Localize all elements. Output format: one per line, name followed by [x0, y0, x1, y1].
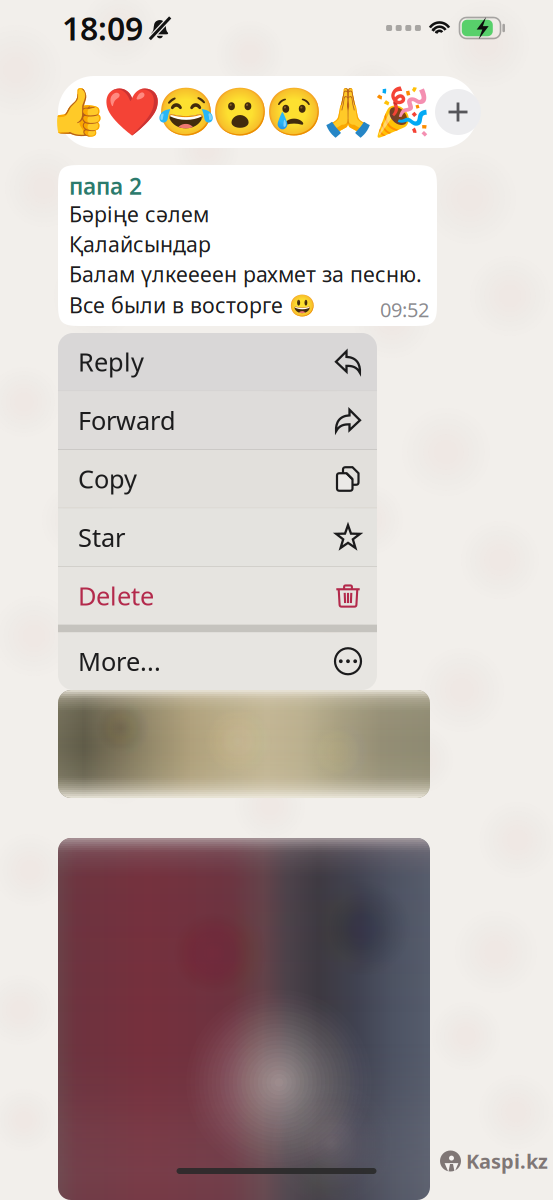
button[interactable]: More...	[58, 632, 377, 690]
button[interactable]: React ❤️	[105, 76, 159, 148]
button[interactable]: Copy	[58, 450, 377, 507]
staticText: Kaspi.kz	[466, 1148, 548, 1174]
staticText: Балам үлкеееен рахмет за песню.	[69, 260, 422, 288]
button[interactable]: More reactions	[429, 76, 487, 148]
button[interactable]: React 😮	[213, 76, 267, 148]
button[interactable]: React 🙏	[321, 76, 375, 148]
staticText: Бәріңе сәлем	[69, 200, 209, 228]
staticText: Все были в восторге 😃	[69, 291, 316, 319]
button[interactable]: Forward	[58, 391, 377, 449]
button[interactable]: Star	[58, 508, 377, 566]
staticText: 🎉	[373, 85, 431, 139]
button[interactable]: React 😢	[267, 76, 321, 148]
staticText: 😂	[157, 85, 215, 139]
staticText: Reply	[78, 345, 144, 378]
staticText: Star	[78, 520, 125, 554]
staticText: 09:52	[380, 296, 429, 323]
staticText: 😢	[265, 85, 323, 139]
staticText: папа 2	[69, 171, 142, 201]
button[interactable]: React 🎉	[375, 76, 429, 148]
staticText: 18:09	[62, 7, 143, 49]
button[interactable]: Reply	[58, 333, 377, 390]
staticText: Қалайсындар	[69, 230, 211, 258]
staticText: 👍	[49, 85, 107, 139]
staticText: More...	[78, 644, 161, 678]
staticText: 😮	[211, 85, 269, 139]
staticText: Copy	[78, 462, 137, 495]
staticText: Delete	[78, 579, 154, 612]
button[interactable]: Delete	[58, 567, 377, 624]
staticText: ❤️	[103, 85, 161, 139]
button[interactable]: React 😂	[159, 76, 213, 148]
staticText: 🙏	[319, 85, 377, 139]
staticText: Forward	[78, 403, 176, 437]
button[interactable]: React 👍	[51, 76, 105, 148]
